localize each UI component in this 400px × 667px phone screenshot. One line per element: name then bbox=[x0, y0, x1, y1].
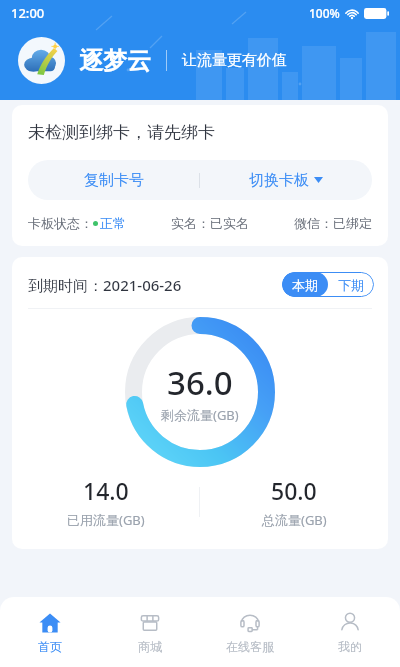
staticText: 首页 bbox=[38, 639, 62, 654]
button[interactable]: 我的 bbox=[300, 597, 400, 667]
staticText: 50.0 bbox=[271, 475, 317, 506]
staticText: 36.0 bbox=[167, 360, 233, 405]
staticText: 已用流量(GB) bbox=[67, 511, 145, 529]
staticText: 让流量更有价值 bbox=[182, 51, 287, 70]
staticText: 12:00 bbox=[11, 4, 45, 22]
staticText: 我的 bbox=[338, 639, 362, 654]
staticText: 剩余流量(GB) bbox=[161, 406, 239, 424]
staticText: 商城 bbox=[138, 639, 162, 654]
staticText: 到期时间：2021-06-26 bbox=[28, 275, 182, 295]
button[interactable]: 商城 bbox=[100, 597, 200, 667]
button[interactable]: 复制卡号 bbox=[28, 160, 199, 200]
staticText: 下期 bbox=[338, 277, 364, 293]
staticText: 逐梦云 bbox=[79, 46, 151, 76]
staticText: 总流量(GB) bbox=[262, 511, 327, 529]
button[interactable]: 切换卡板 bbox=[200, 160, 372, 200]
staticText: 实名：已实名 bbox=[171, 215, 249, 231]
staticText: 切换卡板 bbox=[249, 171, 309, 190]
staticText: 本期 bbox=[292, 277, 318, 293]
staticText: 复制卡号 bbox=[84, 171, 144, 190]
staticText: 正常 bbox=[100, 215, 126, 231]
staticText: 卡板状态： bbox=[28, 215, 93, 231]
staticText: 100% bbox=[309, 5, 340, 21]
button[interactable]: 本期 bbox=[282, 272, 328, 297]
staticText: 在线客服 bbox=[226, 639, 274, 654]
button[interactable]: 首页 bbox=[0, 597, 100, 667]
button[interactable]: 下期 bbox=[328, 272, 374, 297]
staticText: 未检测到绑卡，请先绑卡 bbox=[28, 122, 215, 143]
staticText: 14.0 bbox=[83, 475, 129, 506]
staticText: 微信：已绑定 bbox=[294, 215, 372, 231]
button[interactable]: 在线客服 bbox=[200, 597, 300, 667]
